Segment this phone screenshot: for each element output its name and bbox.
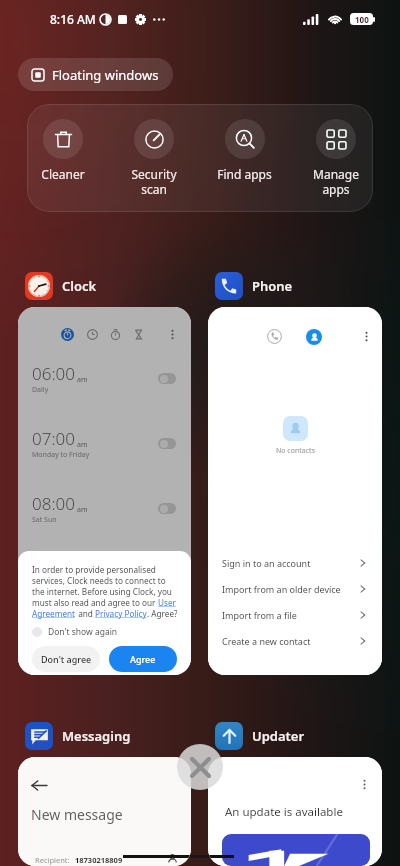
staticText: Import from a file [222,609,297,621]
button[interactable]: Security scan [108,119,199,212]
staticText: 100 [355,14,369,25]
staticText: Clock [62,277,97,295]
staticText: Find apps [217,166,272,182]
staticText: Updater [252,727,305,745]
staticText: Import from an older device [222,583,341,595]
staticText: must also read and agree to our [32,597,158,608]
staticText: An update is available [225,804,343,820]
staticText: Don't agree [41,653,92,665]
staticText: services, Clock needs to connect to [32,575,166,586]
staticText: the internet. Before using Clock, you [32,586,172,597]
staticText: User [158,597,176,608]
staticText: Phone [252,277,293,295]
button[interactable]: Cleaner [18,119,108,212]
staticText: Privacy Policy [95,608,147,619]
staticText: Sign in to an account [222,557,311,569]
button[interactable]: Create a new contact [208,628,382,654]
staticText: 18730218809 [75,855,123,865]
staticText: am [77,505,88,515]
staticText: Monday to Friday [32,450,90,460]
button[interactable]: An update is available [208,757,382,866]
staticText: 06:00 [32,362,75,385]
staticText: 8:16 AM [50,11,96,27]
staticText: Agreement [32,608,76,619]
staticText: Agree [130,653,156,665]
staticText: No contacts [276,446,315,456]
button[interactable]: No contacts [208,307,382,675]
button[interactable]: 06:00 [18,307,191,675]
staticText: In order to provide personalised [32,564,156,575]
staticText: Create a new contact [222,635,311,647]
staticText: Messaging [62,727,131,745]
button[interactable]: Import from a file [208,602,382,628]
staticText: and [76,608,95,619]
staticText: am [77,440,88,450]
staticText: Recipient: [35,855,70,865]
button[interactable]: Import from an older device [208,576,382,602]
staticText: Floating windows [52,66,159,84]
staticText: . Agree? [147,608,177,619]
button[interactable]: Find apps [199,119,290,212]
staticText: 07:00 [32,427,75,450]
button[interactable]: Agree [109,646,177,672]
staticText: am [77,375,88,385]
button[interactable]: Close all [177,744,223,790]
staticText: Don't show again [48,626,118,638]
button[interactable]: Floating windows [18,58,173,91]
staticText: New message [31,805,123,824]
button[interactable]: Manage apps [290,119,381,212]
staticText: Manage apps [313,166,359,197]
button[interactable]: Don't agree [32,646,100,672]
staticText: Daily [32,385,49,395]
button[interactable]: Sign in to an account [208,550,382,576]
staticText: Sat Sun [32,515,57,525]
button[interactable]: New message [18,757,191,866]
staticText: Cleaner [41,166,85,182]
staticText: 08:00 [32,492,75,515]
staticText: Security scan [131,166,177,197]
